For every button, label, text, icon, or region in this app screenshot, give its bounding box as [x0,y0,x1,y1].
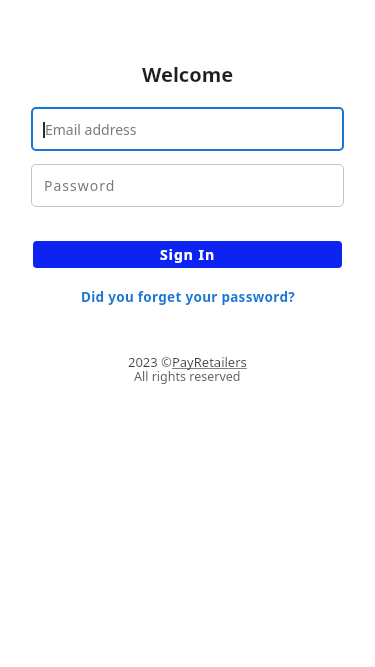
staticText: 2023 ©PayRetailers [128,353,247,371]
button[interactable]: Did you forget your password? [0,288,375,306]
button[interactable]: Email address [31,107,344,151]
staticText: Password [44,176,116,195]
button[interactable]: 2023 ©PayRetailers [0,353,375,371]
button[interactable]: Password [31,164,344,207]
staticText: All rights reserved [134,368,241,385]
button[interactable]: Sign In [33,241,342,268]
staticText: Sign In [160,245,216,264]
staticText: Did you forget your password? [81,288,295,306]
staticText: Email address [45,120,137,139]
staticText: Welcome [142,61,234,88]
